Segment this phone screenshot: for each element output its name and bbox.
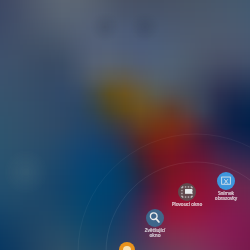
button[interactable]: Zvětšující okno [130, 209, 180, 239]
staticText: Snímek obrazovky [201, 190, 250, 202]
button[interactable]: Akce [119, 242, 135, 250]
staticText: Zvětšující okno [130, 227, 180, 239]
staticText: Plovoucí okno [162, 201, 212, 207]
button[interactable]: Snímek obrazovky [201, 172, 250, 202]
button[interactable]: Plovoucí okno [162, 183, 212, 207]
